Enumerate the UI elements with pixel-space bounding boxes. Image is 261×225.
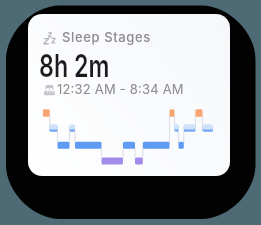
staticText: Sleep Stages bbox=[62, 29, 151, 45]
staticText: 12:32 AM - 8:34 AM bbox=[57, 81, 184, 97]
button[interactable]: Sleep Stages bbox=[28, 14, 230, 176]
staticText: 8h 2m bbox=[39, 47, 109, 85]
